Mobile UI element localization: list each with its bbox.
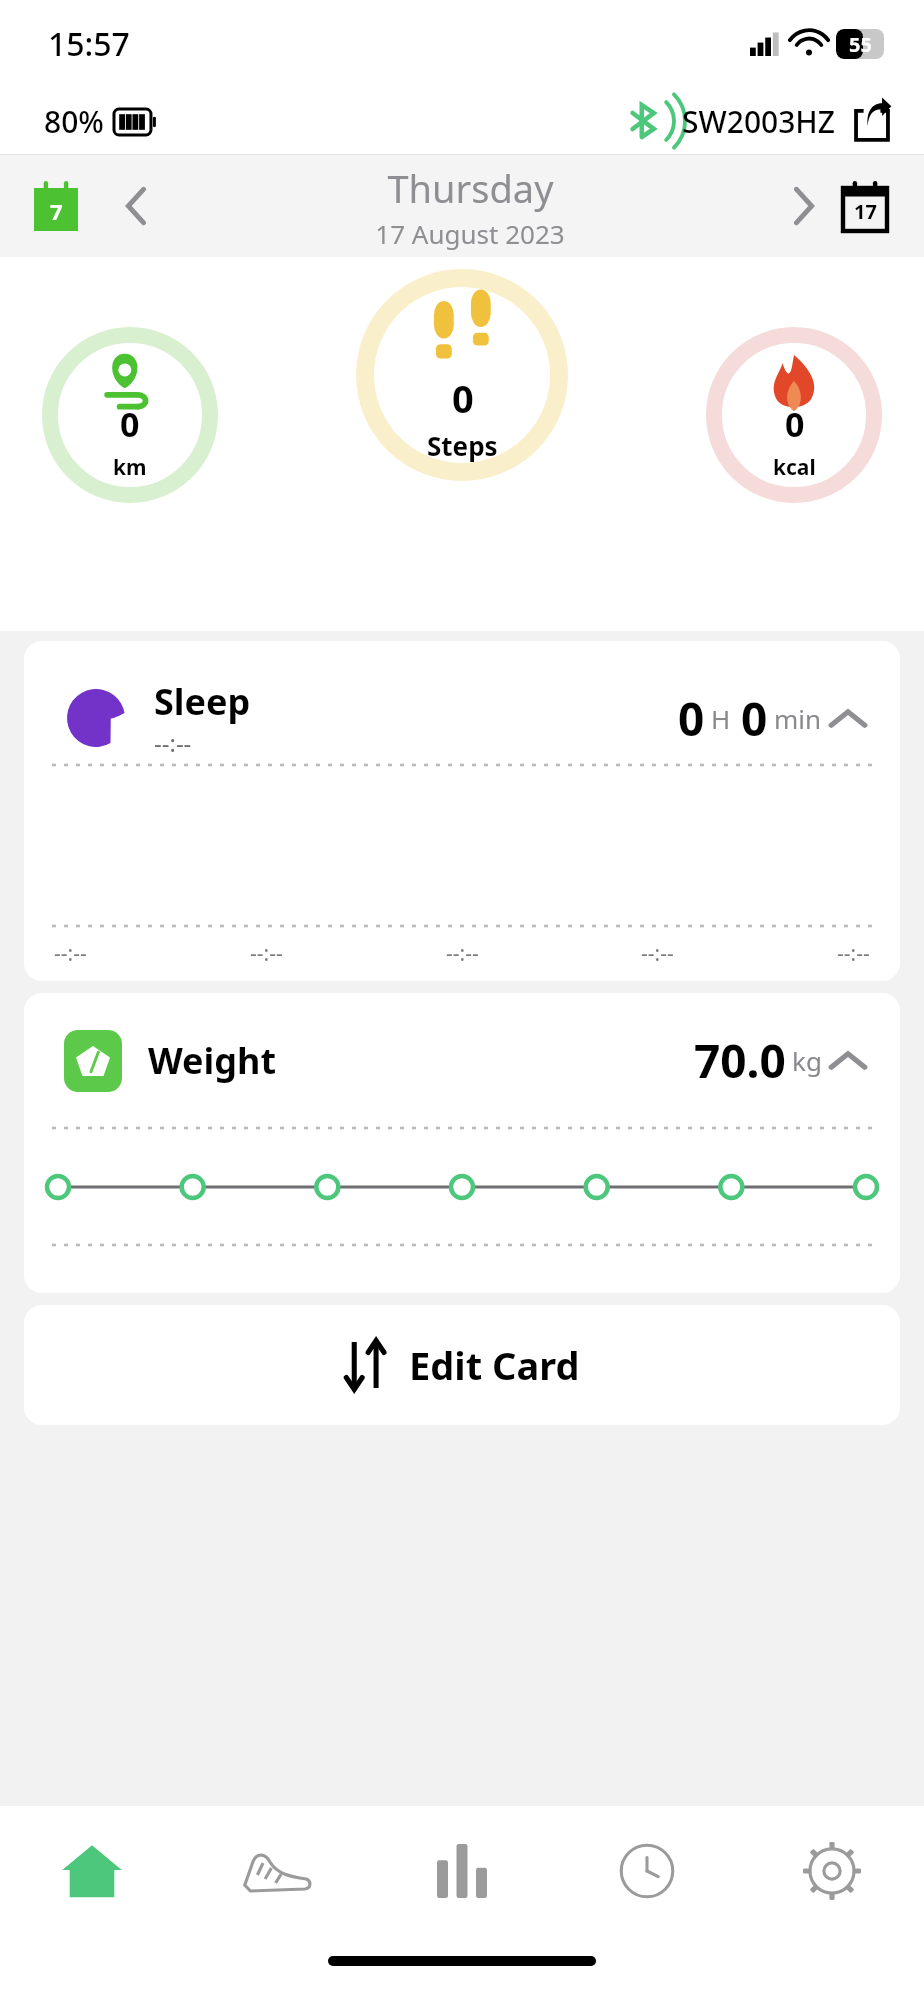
button[interactable]: Week view xyxy=(28,178,84,234)
staticText: z xyxy=(109,695,117,715)
staticText: km xyxy=(113,453,147,482)
staticText: Sleep xyxy=(154,677,251,726)
button[interactable]: Alarm xyxy=(554,1806,739,1936)
staticText: min xyxy=(774,701,822,736)
button[interactable]: Home xyxy=(0,1806,184,1936)
staticText: Thursday xyxy=(387,162,554,214)
staticText: --:-- xyxy=(837,939,870,968)
staticText: H xyxy=(711,701,731,736)
staticText: 17 August 2023 xyxy=(375,216,565,251)
button[interactable]: Weight xyxy=(24,993,900,1293)
button[interactable]: 0 xyxy=(42,327,218,503)
staticText: --:-- xyxy=(641,939,674,968)
staticText: 80% xyxy=(44,101,104,142)
staticText: 7 xyxy=(50,196,63,226)
staticText: Weight xyxy=(148,1036,277,1085)
button[interactable]: Calendar xyxy=(834,175,896,237)
staticText: --:-- xyxy=(250,939,283,968)
button[interactable]: 0 xyxy=(706,327,882,503)
button[interactable]: Share xyxy=(848,97,896,145)
staticText: 0 xyxy=(678,687,705,750)
staticText: 70.0 xyxy=(694,1029,786,1092)
staticText: 17 xyxy=(854,198,877,225)
staticText: 0 xyxy=(741,687,768,750)
staticText: 0 xyxy=(120,401,140,447)
staticText: 55 xyxy=(849,31,872,58)
button[interactable]: z xyxy=(24,641,900,981)
button[interactable]: 0 xyxy=(356,269,568,481)
button[interactable]: Edit Card xyxy=(24,1305,900,1425)
button[interactable]: Next day xyxy=(774,176,834,236)
staticText: Steps xyxy=(427,428,498,463)
staticText: 0 xyxy=(785,401,805,447)
staticText: --:-- xyxy=(446,939,479,968)
button[interactable]: Activity xyxy=(184,1806,369,1936)
staticText: kcal xyxy=(773,453,816,482)
staticText: --:-- xyxy=(54,939,87,968)
staticText: SW2003HZ xyxy=(682,101,836,142)
staticText: Edit Card xyxy=(409,1339,580,1391)
staticText: --:-- xyxy=(154,726,192,759)
staticText: kg xyxy=(792,1043,822,1078)
button[interactable]: Previous day xyxy=(106,176,166,236)
staticText: 0 xyxy=(452,372,474,424)
button[interactable]: Stats xyxy=(369,1806,554,1936)
staticText: 15:57 xyxy=(48,22,130,66)
button[interactable]: Settings xyxy=(739,1806,924,1936)
